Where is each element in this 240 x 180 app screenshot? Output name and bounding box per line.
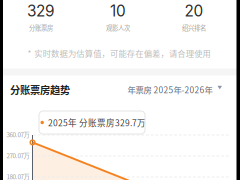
staticText: 绍兴排名 <box>182 23 206 32</box>
staticText: 270.07万 <box>6 151 29 160</box>
staticText: 分账票房趋势 <box>10 82 70 97</box>
staticText: 180.07万 <box>6 172 29 180</box>
button[interactable]: 年票房 2025年-2026年 <box>128 81 228 97</box>
staticText: * 实时数据为估算值，可能存在偏差，请合理使用 <box>27 47 211 59</box>
staticText: 2025年 分账票房329.7万 <box>48 116 146 129</box>
staticText: 分账票房 <box>29 23 53 32</box>
staticText: 329 <box>27 2 55 20</box>
staticText: 20 <box>184 2 203 20</box>
staticText: 观影人次 <box>106 23 130 32</box>
staticText: 360.07万 <box>6 130 29 139</box>
staticText: 年票房 2025年-2026年 <box>127 83 212 96</box>
staticText: 10 <box>110 2 126 20</box>
